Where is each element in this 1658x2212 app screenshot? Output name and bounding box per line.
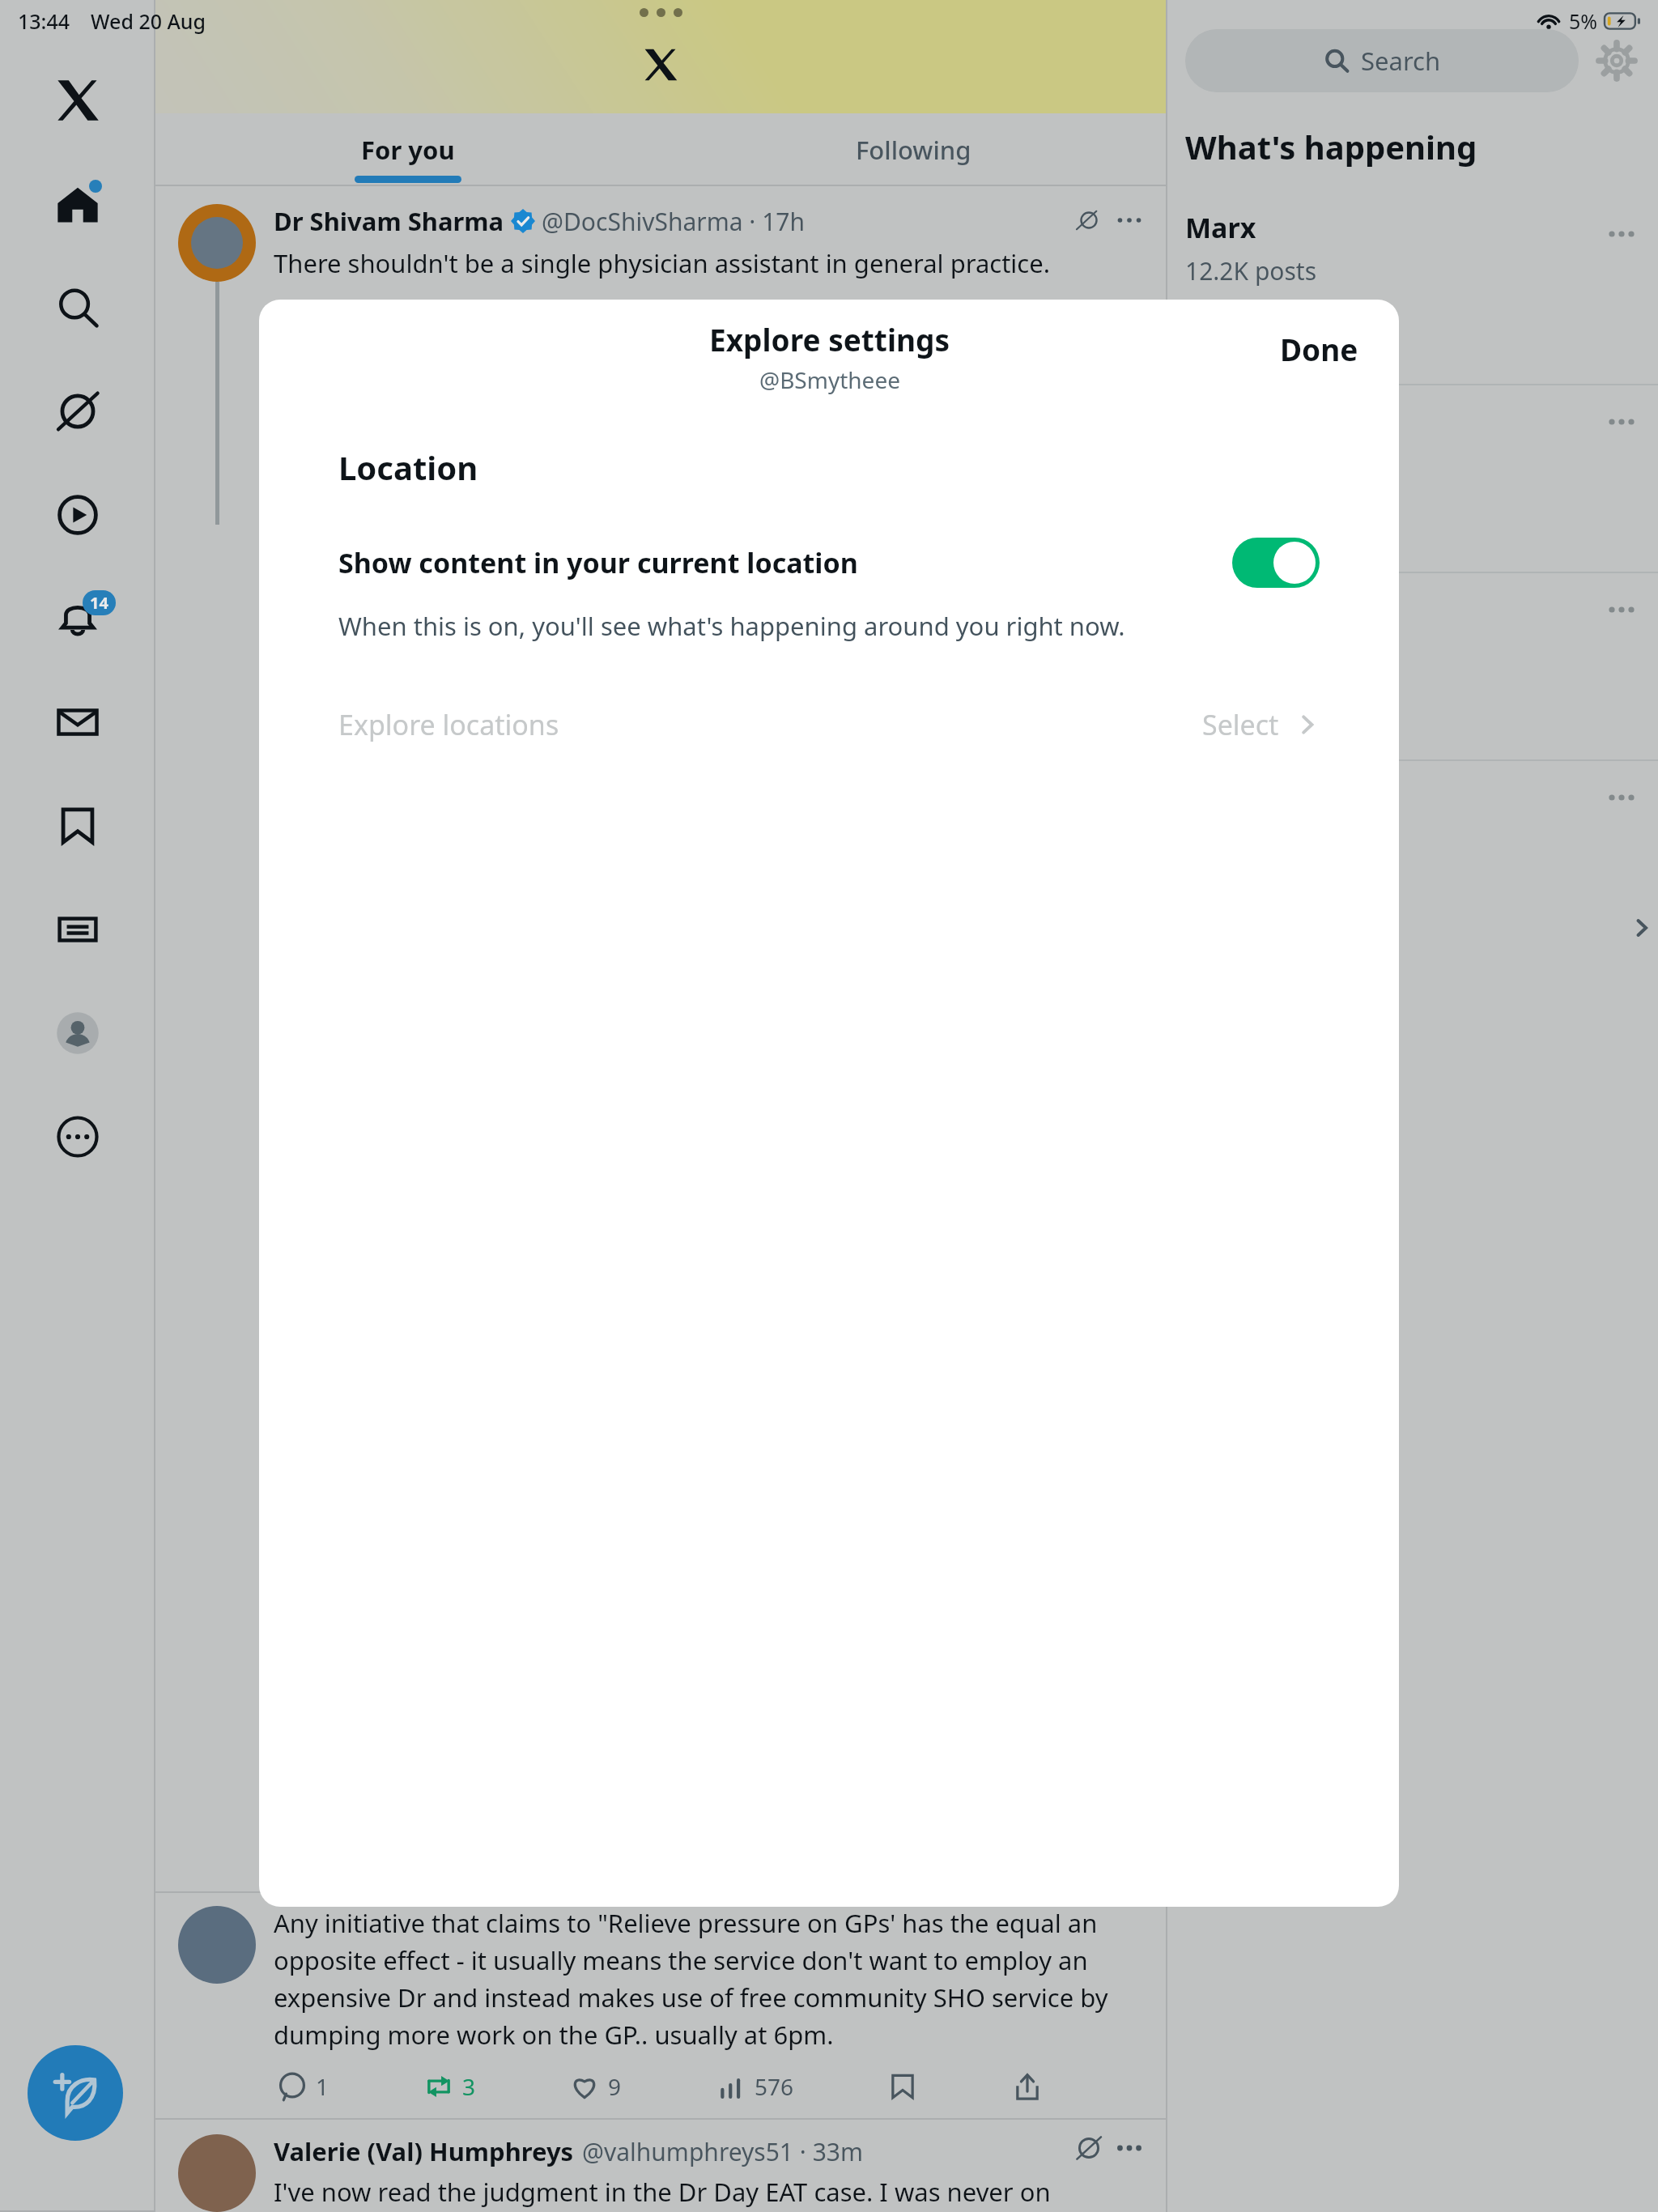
button[interactable]: Video (29, 463, 126, 567)
staticText: Following (856, 133, 971, 167)
staticText: 14 (90, 592, 108, 614)
button[interactable]: More options (1603, 215, 1640, 253)
staticText: Valerie (Val) Humphreys (274, 2134, 574, 2168)
button[interactable]: Settings (1595, 39, 1639, 83)
staticText: 3 (462, 2071, 476, 2102)
button[interactable]: Kingdom (1166, 761, 1658, 947)
button[interactable]: Kingdom (1166, 385, 1658, 572)
staticText: Select (1202, 706, 1279, 743)
button[interactable]: Done (1269, 321, 1370, 377)
staticText: @DocShivSharma · 17h (542, 205, 806, 238)
button[interactable]: X logo (29, 49, 126, 152)
staticText: 576 (755, 2071, 794, 2102)
button[interactable]: Share (1009, 2068, 1046, 2105)
staticText: Marx (1185, 209, 1256, 246)
button[interactable]: Bookmark (884, 2068, 921, 2105)
button[interactable] (0, 0, 1658, 2212)
button[interactable]: Grok (29, 359, 126, 463)
button[interactable]: More options (1603, 403, 1640, 440)
staticText: Dr Shivam Sharma (274, 204, 504, 238)
staticText: @BSmytheee (759, 364, 900, 395)
staticText: Location (338, 445, 478, 489)
button[interactable]: Home (29, 152, 126, 256)
button[interactable]: Profile (29, 981, 126, 1085)
staticText: 1 (316, 2071, 329, 2102)
staticText: I've now read the judgment in the Dr Day… (274, 2175, 1051, 2209)
button[interactable]: Explore locations (259, 706, 1399, 743)
button[interactable]: Lists (29, 878, 126, 981)
staticText: @valhumphreys51 · 33m (582, 2135, 864, 2168)
staticText: When this is on, you'll see what's happe… (338, 609, 1125, 643)
staticText: What's happening (1185, 125, 1477, 168)
staticText: NO (366, 551, 382, 564)
staticText: Any initiative that claims to "Relieve p… (274, 1906, 1143, 2052)
button[interactable]: Show content in your current location, o… (1232, 538, 1320, 588)
staticText: There shouldn't be a single physician as… (274, 246, 1051, 280)
staticText: For you (361, 133, 455, 167)
button[interactable]: Like (566, 2068, 625, 2105)
button[interactable]: Messages (29, 670, 126, 774)
button[interactable]: Repost (420, 2068, 479, 2105)
staticText: Search (1361, 44, 1441, 78)
button[interactable]: Search (29, 256, 126, 359)
staticText: Explore locations (338, 706, 1202, 743)
button[interactable]: Reply (274, 2068, 333, 2105)
staticText: 5% (1569, 7, 1598, 35)
button[interactable]: For you (155, 113, 661, 186)
button[interactable]: Compose post (28, 2045, 123, 2141)
staticText: Done (1280, 329, 1358, 369)
staticText: Show content in your current location (338, 544, 1232, 581)
staticText: 9 (608, 2071, 622, 2102)
button[interactable]: More options (1603, 779, 1640, 816)
button[interactable]: Show content in your current location (259, 538, 1399, 588)
button[interactable]: Show more (1626, 912, 1658, 944)
button[interactable]: More (29, 1085, 126, 1189)
button[interactable]: Marx (1166, 198, 1658, 384)
staticText: 13:44 Wed 20 Aug (18, 7, 206, 35)
button[interactable]: More options (1166, 573, 1658, 759)
button[interactable]: Notifications (29, 567, 126, 670)
button[interactable]: Views (712, 2068, 797, 2105)
staticText: 12.2K posts (1185, 254, 1317, 287)
button[interactable]: Search (1185, 29, 1579, 92)
button[interactable]: Following (661, 113, 1166, 186)
button[interactable]: More options (1603, 591, 1640, 628)
button[interactable]: Bookmarks (29, 774, 126, 878)
staticText: Explore settings (709, 319, 950, 359)
